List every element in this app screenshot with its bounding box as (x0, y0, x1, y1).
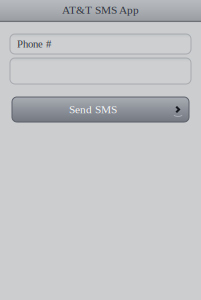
staticText: Phone # (17, 38, 51, 50)
staticText: AT&T SMS App (62, 4, 139, 16)
button[interactable]: Send SMS (12, 97, 189, 122)
staticText: Send SMS (69, 103, 117, 116)
